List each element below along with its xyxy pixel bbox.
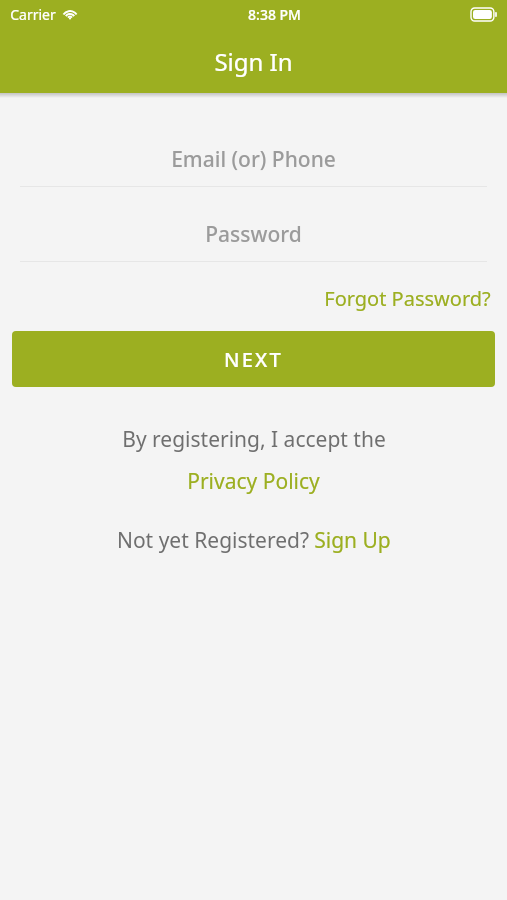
- button[interactable]: Email (or) Phone: [0, 142, 507, 176]
- staticText: Email (or) Phone: [171, 145, 336, 174]
- staticText: 8:38 PM: [248, 5, 301, 24]
- other: Wi-Fi signal: [62, 8, 78, 20]
- other: Battery full: [471, 8, 497, 21]
- staticText: Forgot Password?: [324, 285, 491, 312]
- staticText: Sign In: [214, 45, 293, 78]
- staticText: By registering, I accept the: [122, 425, 386, 454]
- button[interactable]: Privacy Policy: [183, 465, 324, 498]
- staticText: Privacy Policy: [187, 467, 320, 496]
- staticText: Carrier: [10, 5, 56, 24]
- staticText: Sign Up: [314, 526, 391, 555]
- button[interactable]: Sign Up: [312, 524, 393, 557]
- staticText: NEXT: [224, 346, 283, 373]
- staticText: Not yet Registered?: [114, 526, 312, 555]
- button[interactable]: Password: [0, 217, 507, 251]
- button[interactable]: Forgot Password?: [322, 281, 493, 316]
- staticText: Password: [205, 220, 302, 249]
- button[interactable]: NEXT: [12, 331, 495, 387]
